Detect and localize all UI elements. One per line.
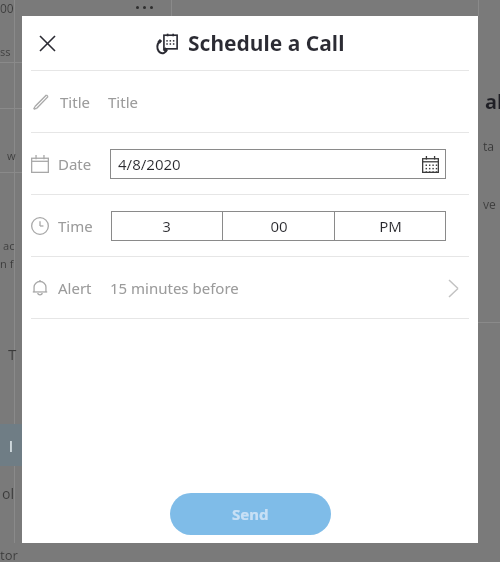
staticText: Alert [58,278,92,298]
button[interactable]: 3 [111,211,222,241]
staticText: ta [483,138,495,154]
button[interactable]: Alert [22,257,478,318]
staticText: ve [483,196,496,212]
staticText: tor [0,546,18,562]
button[interactable]: Send [170,493,331,535]
staticText: Schedule a Call [188,29,345,58]
button[interactable]: 00 [223,211,334,241]
staticText: T [8,344,17,364]
button[interactable]: Time [22,195,478,256]
other: Pick date [422,156,439,173]
staticText: 4/8/2020 [118,154,181,174]
staticText: 00 [270,216,288,236]
staticText: ol [2,484,15,503]
staticText: l [9,436,13,456]
staticText: al [485,88,500,115]
staticText: 3 [162,216,171,236]
staticText: Time [58,216,93,236]
staticText: 15 minutes before [110,278,239,298]
staticText: Date [58,154,92,174]
staticText: ss [0,44,11,59]
staticText: n f [0,256,14,271]
button[interactable]: PM [335,211,446,241]
staticText: 00 [0,0,14,16]
staticText: w [7,148,16,163]
staticText: Title [108,92,138,112]
staticText: PM [379,216,402,236]
staticText: ac [3,238,15,253]
button[interactable]: Title [22,71,478,132]
button[interactable]: 4/8/2020 [110,149,446,179]
staticText: Send [232,504,269,524]
staticText: Title [60,92,90,112]
button[interactable]: Close [29,25,65,61]
other: Change alert [442,277,464,299]
button[interactable]: Date [22,133,478,194]
